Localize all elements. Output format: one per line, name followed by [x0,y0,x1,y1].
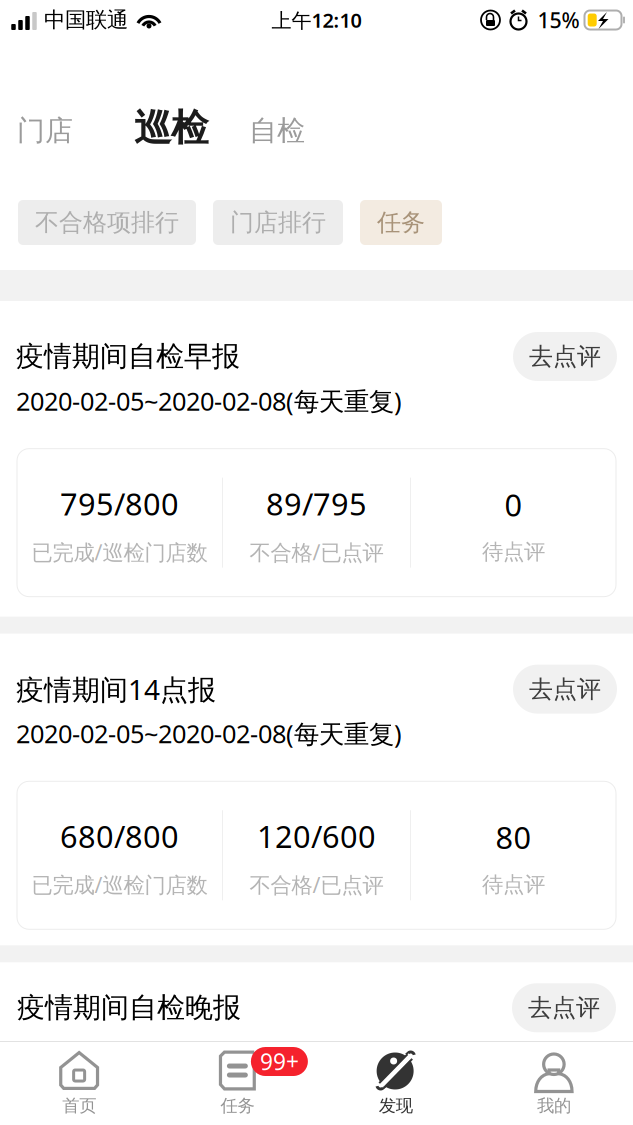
button[interactable]: 巡检 [134,105,208,151]
button[interactable]: 去点评 [512,983,616,1032]
button[interactable]: 门店排行 [213,200,343,245]
staticText: 2020-02-05~2020-02-08(每天重复) [16,384,402,418]
staticText: 首页 [62,1095,96,1116]
button[interactable]: 去点评 [513,332,617,381]
staticText: 疫情期间自检早报 [16,339,240,374]
staticText: 任务 [377,208,425,237]
staticText: 99+ [260,1046,299,1076]
button[interactable]: 去点评 [513,665,617,714]
staticText: 待点评 [482,539,545,565]
staticText: 去点评 [529,674,601,704]
staticText: 自检 [249,113,305,148]
button[interactable]: 自检 [249,113,305,151]
staticText: 上午12:10 [271,7,361,33]
staticText: 15% [537,6,579,34]
staticText: 发现 [379,1095,413,1116]
staticText: 去点评 [528,993,600,1022]
staticText: 120/600 [257,816,376,856]
button[interactable]: 任务 [158,1041,316,1125]
staticText: 疫情期间自检晚报 [17,991,241,1025]
staticText: 0 [504,484,522,525]
staticText: 待点评 [482,871,545,898]
button[interactable]: 门店 [17,113,73,151]
staticText: 2020-02-05~2020-02-08(每天重复) [16,717,402,750]
button[interactable]: 发现 [316,1041,475,1125]
staticText: 巡检 [134,105,208,151]
button[interactable]: 任务 [360,200,442,245]
staticText: 80 [495,817,531,857]
button[interactable]: 首页 [0,1041,158,1125]
staticText: 不合格/已点评 [249,870,383,899]
staticText: 不合格项排行 [35,208,179,237]
button[interactable]: 我的 [475,1041,633,1125]
button[interactable]: 不合格项排行 [18,200,196,245]
staticText: 已完成/巡检门店数 [31,870,207,899]
staticText: 我的 [537,1095,571,1116]
staticText: 中国联通 [44,7,128,33]
staticText: 疫情期间14点报 [16,671,216,708]
staticText: 已完成/巡检门店数 [31,538,207,566]
staticText: 680/800 [60,816,179,856]
staticText: 795/800 [60,483,179,524]
staticText: 不合格/已点评 [249,538,383,566]
staticText: 任务 [220,1095,254,1116]
staticText: 去点评 [529,342,601,371]
staticText: 门店排行 [230,208,326,237]
staticText: 89/795 [266,483,367,524]
staticText: 门店 [17,113,73,148]
